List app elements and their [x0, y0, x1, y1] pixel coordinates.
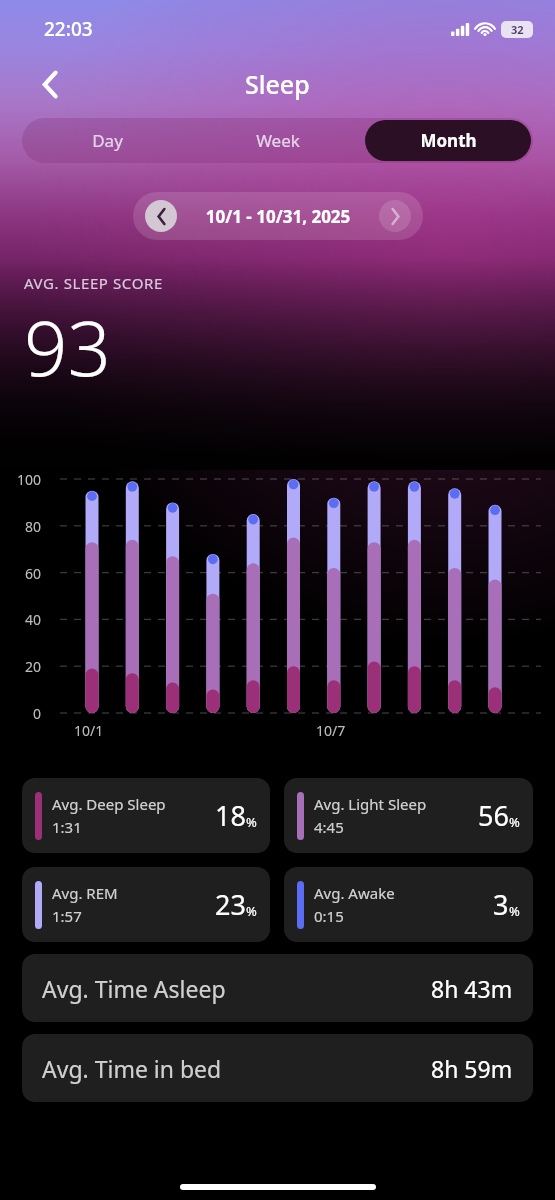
staticText: Avg. Time in bed [42, 1053, 431, 1084]
staticText: Sleep [245, 67, 310, 101]
button[interactable]: Avg. REM [22, 867, 270, 942]
staticText: 10/7 [316, 721, 346, 740]
staticText: Avg. Time Asleep [42, 973, 431, 1004]
staticText: 32 [511, 22, 524, 37]
staticText: 22:03 [44, 16, 93, 42]
button[interactable]: Avg. Time Asleep [22, 954, 533, 1022]
button[interactable]: Week [195, 120, 361, 161]
staticText: 56 [478, 797, 509, 834]
staticText: Avg. Awake [314, 883, 395, 903]
staticText: 8h 59m [431, 1053, 513, 1084]
staticText: 18 [215, 797, 246, 834]
button[interactable]: Avg. Light Sleep [284, 778, 533, 853]
staticText: 10/1 [74, 721, 104, 740]
staticText: 8h 43m [431, 973, 513, 1004]
button[interactable]: Next period [379, 200, 411, 232]
staticText: 80 [25, 517, 42, 536]
staticText: 3 [493, 886, 509, 923]
staticText: 60 [25, 564, 42, 583]
staticText: 93 [24, 295, 111, 399]
staticText: 40 [25, 610, 42, 629]
staticText: 1:57 [52, 906, 82, 926]
staticText: Avg. Light Sleep [314, 794, 427, 814]
staticText: Avg. Deep Sleep [52, 794, 166, 814]
staticText: 0 [33, 704, 42, 723]
staticText: 100 [17, 470, 42, 489]
staticText: Week [256, 129, 300, 152]
button[interactable]: Avg. Time in bed [22, 1034, 533, 1102]
staticText: 23 [215, 886, 246, 923]
staticText: 10/1 - 10/31, 2025 [177, 205, 379, 228]
staticText: % [246, 902, 257, 920]
staticText: % [246, 813, 257, 831]
staticText: Day [92, 129, 123, 152]
staticText: Avg. REM [52, 883, 118, 903]
staticText: 4:45 [314, 817, 344, 837]
staticText: % [509, 902, 520, 920]
button[interactable]: Avg. Deep Sleep [22, 778, 270, 853]
button[interactable]: Avg. Awake [284, 867, 533, 942]
button[interactable]: Previous period [145, 200, 177, 232]
staticText: Month [420, 129, 477, 152]
staticText: 1:31 [52, 817, 82, 837]
staticText: 0:15 [314, 906, 344, 926]
staticText: % [509, 813, 520, 831]
staticText: 20 [25, 657, 42, 676]
button[interactable]: Back [28, 62, 72, 106]
button[interactable]: Month [365, 120, 531, 161]
staticText: AVG. SLEEP SCORE [24, 273, 163, 293]
button[interactable]: Day [24, 120, 191, 161]
